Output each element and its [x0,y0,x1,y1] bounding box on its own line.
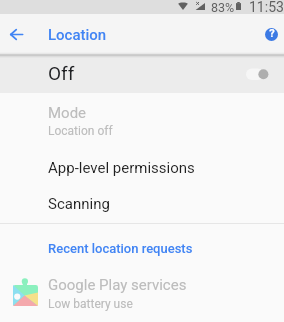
staticText: Google Play services [48,276,187,294]
staticText: 83% [211,0,235,15]
staticText: Mode [48,104,87,122]
staticText: Location [48,26,107,44]
staticText: ? [269,27,275,40]
staticText: Scanning [48,195,110,213]
button[interactable]: Help [257,20,284,48]
button[interactable]: Mode [0,98,284,140]
staticText: App-level permissions [48,159,195,177]
button[interactable]: Off [0,54,284,93]
staticText: Location off [48,124,113,138]
button[interactable]: Scanning [0,182,284,222]
staticText: Off [48,62,75,84]
button[interactable]: Navigate up [2,20,30,48]
staticText: 11:53 [249,0,284,15]
button[interactable]: Google Play services [0,266,284,312]
staticText: Low battery use [48,297,133,311]
button[interactable]: App-level permissions [0,145,284,182]
button[interactable]: Recent location requests [0,228,284,262]
staticText: Recent location requests [48,241,193,256]
